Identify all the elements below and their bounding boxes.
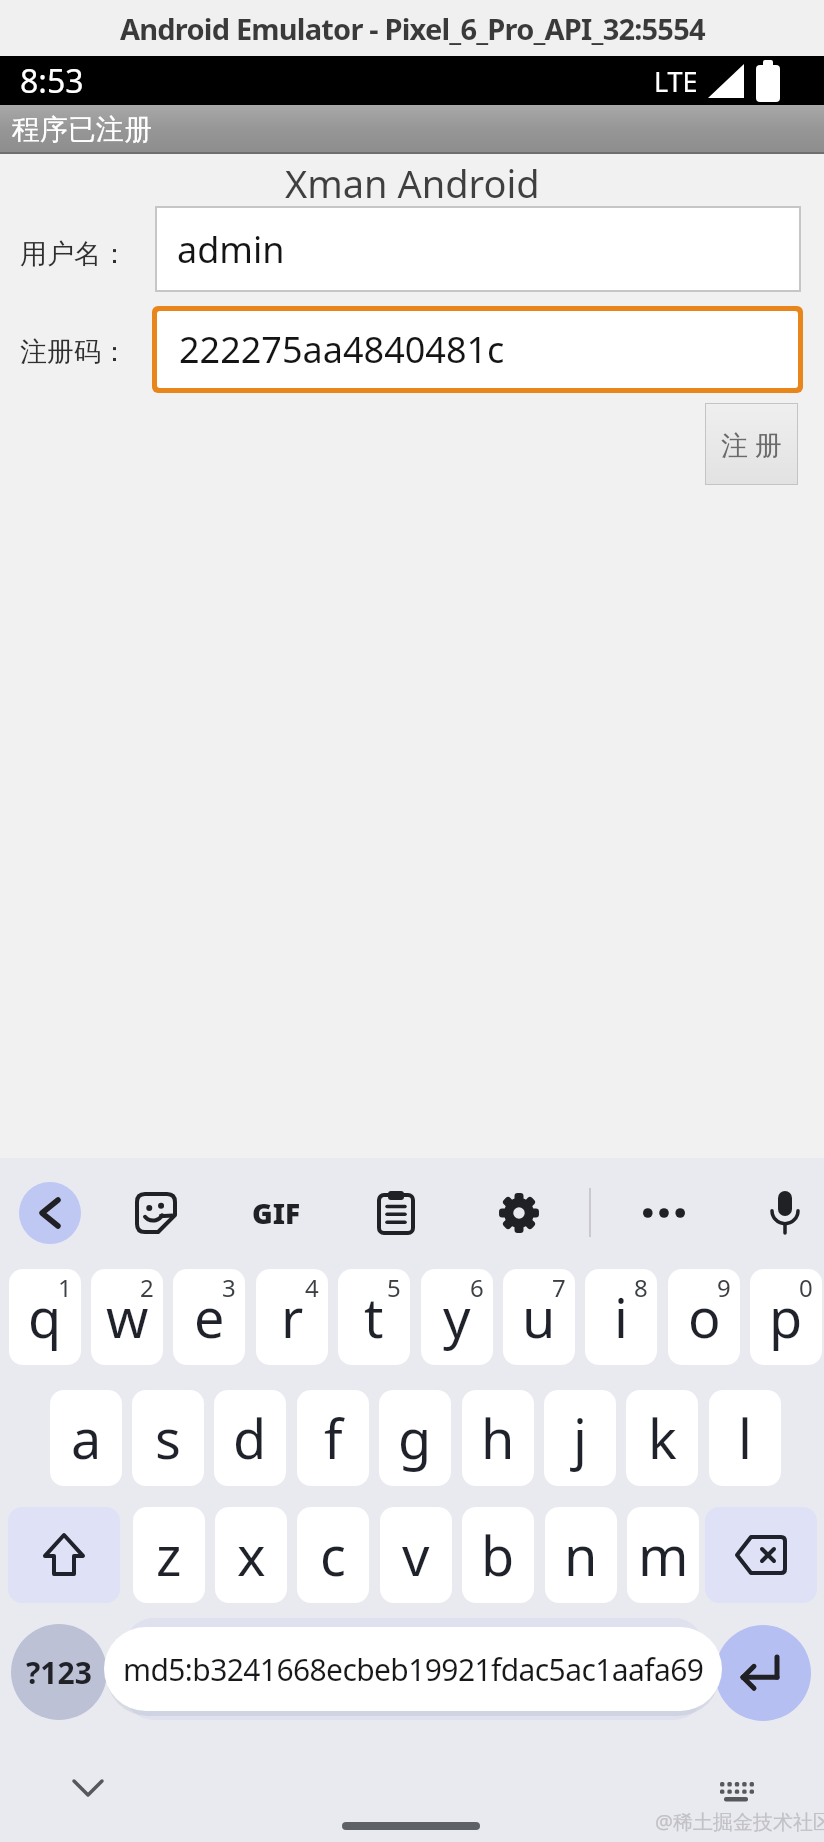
staticText: 8 xyxy=(634,1271,648,1304)
button[interactable]: w xyxy=(91,1269,163,1365)
button[interactable] xyxy=(72,1778,104,1798)
button[interactable]: f xyxy=(297,1390,369,1486)
staticText: 注册码： xyxy=(20,335,128,369)
button[interactable]: r xyxy=(256,1269,328,1365)
button[interactable] xyxy=(135,1192,177,1234)
staticText: p xyxy=(769,1280,803,1354)
button[interactable]: y xyxy=(421,1269,493,1365)
staticText: s xyxy=(155,1401,181,1475)
staticText: n xyxy=(564,1518,598,1592)
staticText: z xyxy=(156,1518,182,1592)
staticText: j xyxy=(573,1401,587,1475)
button[interactable] xyxy=(8,1507,120,1603)
staticText: md5:b3241668ecbeb19921fdac5ac1aafa69 xyxy=(123,1649,704,1690)
staticText: 7 xyxy=(552,1271,566,1304)
button[interactable]: l xyxy=(709,1390,781,1486)
button[interactable]: p xyxy=(750,1269,822,1365)
button[interactable]: d xyxy=(214,1390,286,1486)
button[interactable]: 222275aa4840481c xyxy=(152,306,803,393)
button[interactable] xyxy=(377,1191,415,1235)
button[interactable]: a xyxy=(50,1390,122,1486)
button[interactable] xyxy=(715,1625,811,1721)
button[interactable]: v xyxy=(380,1507,452,1603)
staticText: 0 xyxy=(799,1271,813,1304)
button[interactable]: u xyxy=(503,1269,575,1365)
button[interactable]: GIF xyxy=(246,1194,306,1232)
button[interactable]: admin xyxy=(155,206,801,292)
staticText: f xyxy=(324,1401,343,1475)
button[interactable] xyxy=(767,1189,803,1237)
button[interactable] xyxy=(497,1191,541,1235)
button[interactable]: i xyxy=(585,1269,657,1365)
staticText: v xyxy=(402,1518,430,1592)
button[interactable] xyxy=(19,1182,81,1244)
button[interactable]: z xyxy=(133,1507,205,1603)
staticText: i xyxy=(614,1280,628,1354)
staticText: c xyxy=(320,1518,346,1592)
staticText: y xyxy=(443,1280,471,1354)
staticText: 1 xyxy=(58,1271,72,1304)
button[interactable]: q xyxy=(9,1269,81,1365)
staticText: l xyxy=(738,1401,752,1475)
staticText: admin xyxy=(177,225,285,274)
staticText: 6 xyxy=(470,1271,484,1304)
staticText: 程序已注册 xyxy=(12,112,152,147)
staticText: LTE xyxy=(654,63,698,100)
button[interactable]: md5:b3241668ecbeb19921fdac5ac1aafa69 xyxy=(104,1627,722,1711)
button[interactable]: c xyxy=(297,1507,369,1603)
staticText: t xyxy=(364,1280,384,1354)
button[interactable]: h xyxy=(462,1390,534,1486)
staticText: o xyxy=(688,1280,721,1354)
staticText: k xyxy=(648,1401,677,1475)
button[interactable]: n xyxy=(545,1507,617,1603)
button[interactable]: g xyxy=(379,1390,451,1486)
button[interactable]: ?123 xyxy=(11,1624,107,1720)
button[interactable]: b xyxy=(462,1507,534,1603)
staticText: ?123 xyxy=(26,1652,92,1693)
staticText: m xyxy=(638,1518,689,1592)
staticText: 注 册 xyxy=(721,426,783,463)
button[interactable]: 注 册 xyxy=(705,403,798,485)
staticText: 4 xyxy=(305,1271,319,1304)
staticText: 用户名： xyxy=(20,237,128,271)
staticText: 8:53 xyxy=(20,59,84,103)
button[interactable] xyxy=(642,1207,686,1219)
staticText: a xyxy=(71,1401,102,1475)
staticText: GIF xyxy=(252,1194,301,1232)
button[interactable] xyxy=(718,1780,756,1806)
staticText: 222275aa4840481c xyxy=(179,325,505,374)
staticText: e xyxy=(194,1280,225,1354)
staticText: 5 xyxy=(387,1271,401,1304)
button[interactable]: e xyxy=(173,1269,245,1365)
staticText: d xyxy=(233,1401,267,1475)
staticText: Xman Android xyxy=(285,157,540,209)
staticText: w xyxy=(106,1280,149,1354)
staticText: r xyxy=(281,1280,304,1354)
staticText: b xyxy=(481,1518,515,1592)
button[interactable]: x xyxy=(215,1507,287,1603)
staticText: 2 xyxy=(140,1271,154,1304)
button[interactable]: o xyxy=(668,1269,740,1365)
staticText: x xyxy=(237,1518,266,1592)
button[interactable]: t xyxy=(338,1269,410,1365)
button[interactable] xyxy=(705,1507,817,1603)
button[interactable]: k xyxy=(626,1390,698,1486)
staticText: @稀土掘金技术社区 xyxy=(655,1808,824,1835)
staticText: 3 xyxy=(222,1271,236,1304)
staticText: 9 xyxy=(717,1271,731,1304)
staticText: h xyxy=(481,1401,515,1475)
staticText: g xyxy=(398,1401,432,1475)
button[interactable]: m xyxy=(627,1507,699,1603)
button[interactable]: j xyxy=(544,1390,616,1486)
button[interactable]: s xyxy=(132,1390,204,1486)
staticText: u xyxy=(522,1280,556,1354)
staticText: q xyxy=(28,1280,62,1354)
staticText: Android Emulator - Pixel_6_Pro_API_32:55… xyxy=(120,9,705,48)
